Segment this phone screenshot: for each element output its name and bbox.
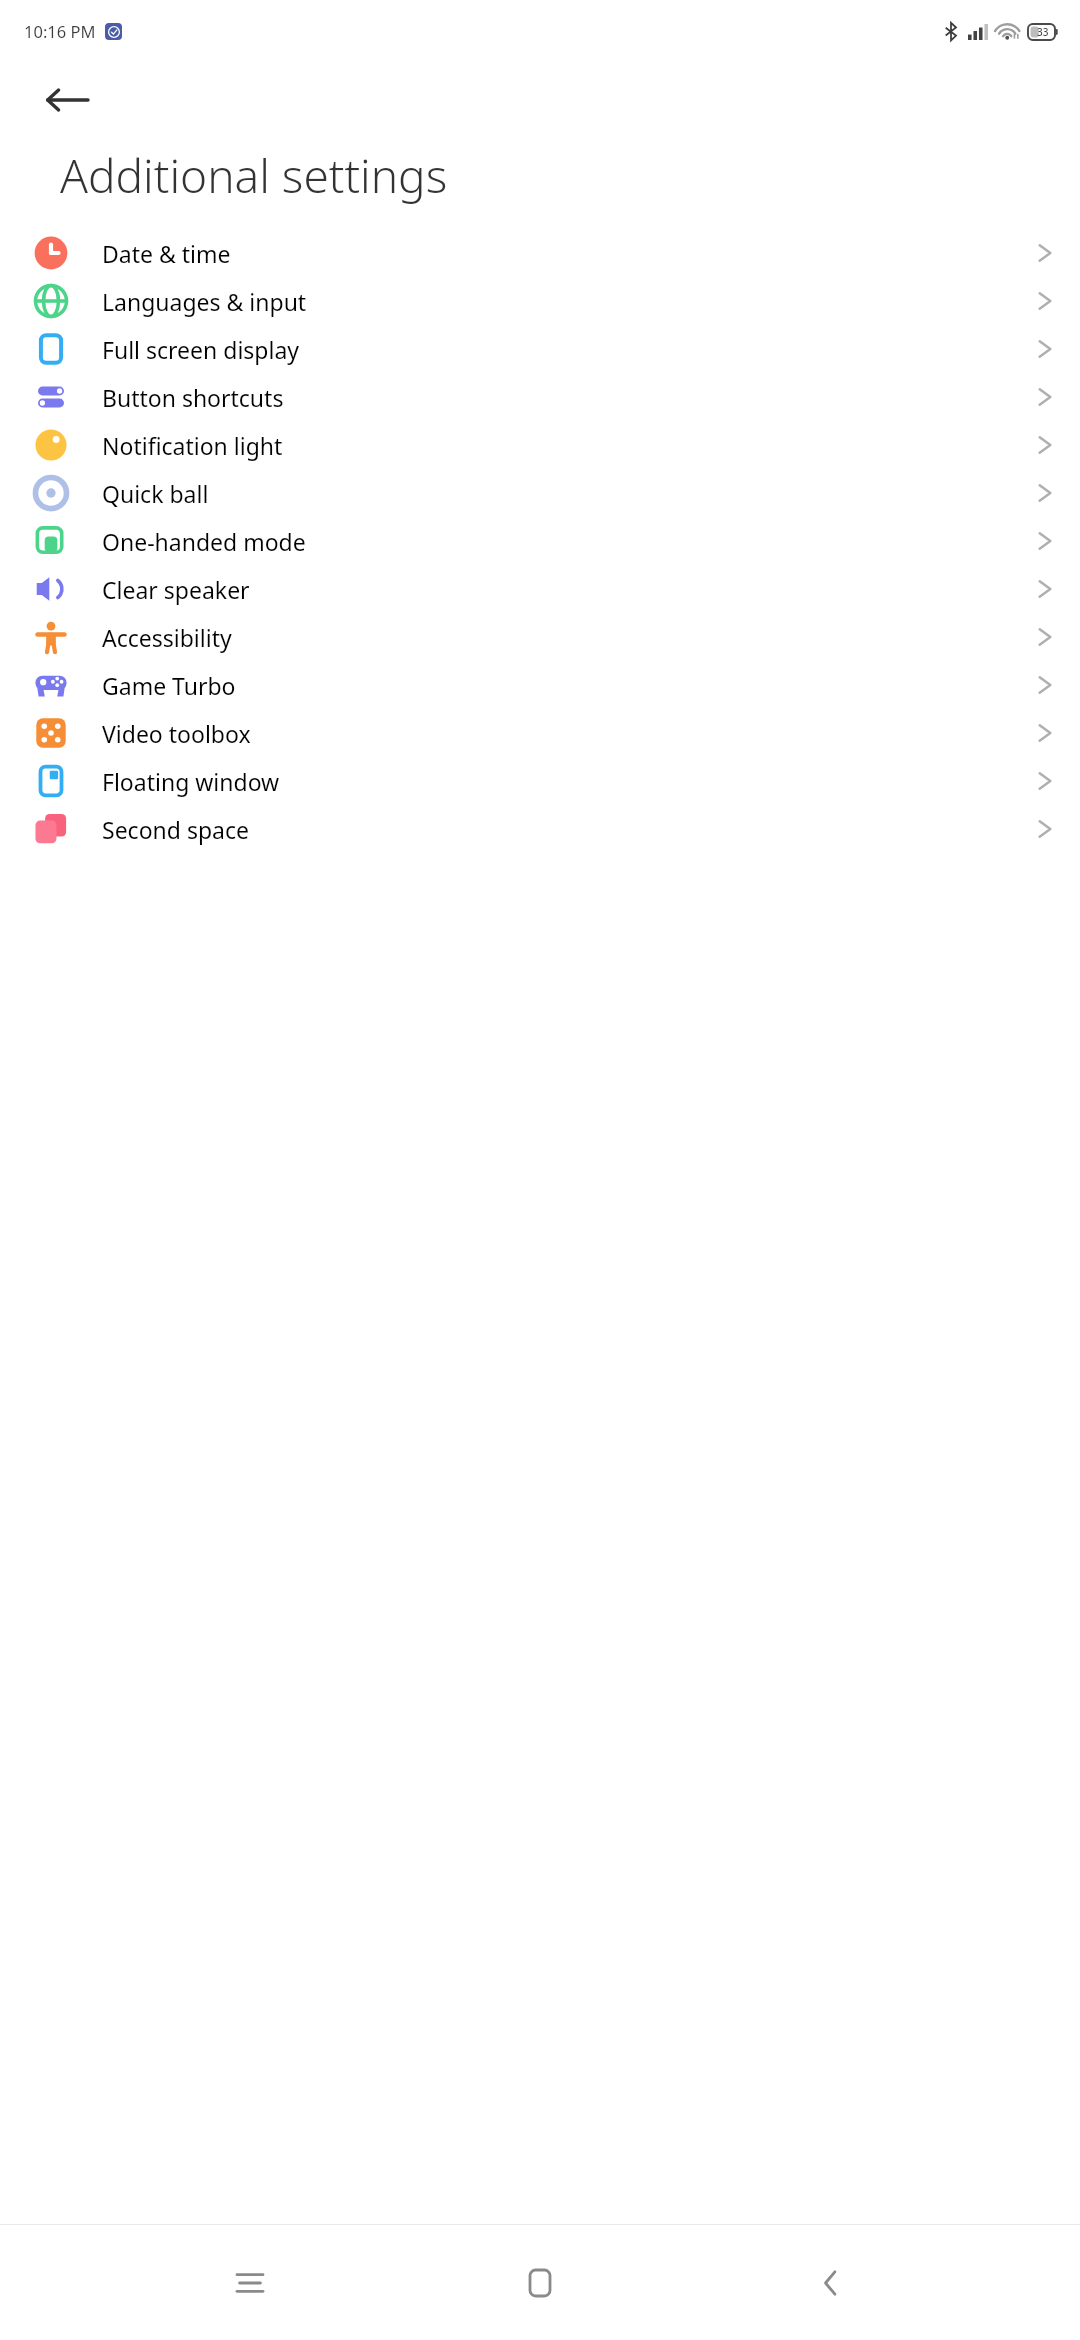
- button[interactable]: Quick ball: [0, 469, 1080, 517]
- button[interactable]: Video toolbox: [0, 709, 1080, 757]
- staticText: Accessibility: [102, 622, 232, 653]
- button[interactable]: Back: [46, 72, 102, 128]
- staticText: Quick ball: [102, 478, 209, 509]
- staticText: Additional settings: [60, 144, 448, 207]
- button[interactable]: Date & time: [0, 229, 1080, 277]
- button[interactable]: Languages & input: [0, 277, 1080, 325]
- staticText: Date & time: [102, 238, 231, 269]
- button[interactable]: Floating window: [0, 757, 1080, 805]
- staticText: One-handed mode: [102, 526, 306, 557]
- button[interactable]: Game Turbo: [0, 661, 1080, 709]
- staticText: Languages & input: [102, 286, 307, 317]
- staticText: Clear speaker: [102, 574, 250, 605]
- staticText: Full screen display: [102, 334, 300, 365]
- staticText: Video toolbox: [102, 718, 251, 749]
- staticText: Button shortcuts: [102, 382, 284, 413]
- staticText: Second space: [102, 814, 249, 845]
- button[interactable]: Accessibility: [0, 613, 1080, 661]
- button[interactable]: Full screen display: [0, 325, 1080, 373]
- button[interactable]: One-handed mode: [0, 517, 1080, 565]
- staticText: Notification light: [102, 430, 283, 461]
- button[interactable]: Clear speaker: [0, 565, 1080, 613]
- button[interactable]: Recents: [210, 2243, 290, 2323]
- staticText: Game Turbo: [102, 670, 236, 701]
- button[interactable]: Button shortcuts: [0, 373, 1080, 421]
- staticText: 33: [1037, 25, 1049, 39]
- staticText: Floating window: [102, 766, 280, 797]
- button[interactable]: Back: [790, 2243, 870, 2323]
- staticText: 10:16 PM: [24, 20, 96, 42]
- button[interactable]: Second space: [0, 805, 1080, 853]
- button[interactable]: Notification light: [0, 421, 1080, 469]
- button[interactable]: Home: [500, 2243, 580, 2323]
